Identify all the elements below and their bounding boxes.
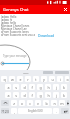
button[interactable]: o: [65, 76, 69, 82]
button[interactable]: g: [37, 84, 43, 90]
staticText: English (UK): [28, 109, 43, 113]
staticText: f: [31, 93, 33, 98]
button[interactable]: b: [43, 100, 49, 106]
button[interactable]: aFrom Supports Jones: [1, 30, 29, 33]
button[interactable]: Download: [38, 33, 55, 38]
staticText: f: [31, 85, 33, 90]
button[interactable]: Monique Chanel Lee: [1, 27, 27, 30]
staticText: o: [66, 77, 69, 82]
button[interactable]: y: [41, 76, 47, 82]
staticText: Monique Chanel Jones: [1, 24, 30, 27]
button[interactable]: u: [49, 76, 55, 82]
staticText: d: [23, 93, 26, 98]
button[interactable]: s: [13, 92, 19, 98]
button[interactable]: x: [19, 100, 25, 106]
button[interactable]: t: [33, 76, 39, 82]
button[interactable]: Backspace: [67, 100, 69, 106]
staticText: i: [60, 77, 61, 82]
staticText: g: [39, 93, 42, 98]
button[interactable]: f: [29, 84, 35, 90]
button[interactable]: hello: [22, 71, 30, 74]
button[interactable]: Type your message: [3, 54, 27, 58]
staticText: u: [51, 77, 54, 82]
staticText: s: [15, 93, 17, 98]
button[interactable]: Jadwa: hello: [1, 21, 17, 24]
button[interactable]: Genesys Chat: [3, 7, 29, 12]
staticText: e: [19, 77, 22, 82]
staticText: Monique Chanel Lee: [1, 27, 27, 30]
button[interactable]: v: [35, 100, 41, 106]
button[interactable]: h: [45, 92, 51, 98]
button[interactable]: aFrom Supports sent you a: [1, 33, 35, 36]
staticText: s: [15, 85, 17, 90]
staticText: h: [47, 85, 50, 90]
button[interactable]: k: [61, 92, 67, 98]
staticText: k: [63, 93, 65, 98]
button[interactable]: k: [61, 84, 67, 90]
button[interactable]: j: [53, 84, 59, 90]
button[interactable]: n: [51, 100, 57, 106]
staticText: z: [13, 101, 15, 106]
staticText: h: [47, 93, 50, 98]
button[interactable]: q: [1, 76, 7, 82]
button[interactable]: ,: [11, 108, 17, 114]
staticText: k: [63, 85, 65, 90]
button[interactable]: d: [21, 92, 27, 98]
staticText: c: [29, 101, 31, 106]
staticText: Jadwa: hi: [1, 18, 13, 21]
staticText: j: [56, 85, 57, 90]
button[interactable]: Jadwa: hi: [1, 18, 13, 21]
button[interactable]: Jadwa: Hello: [1, 15, 17, 18]
staticText: a: [7, 85, 10, 90]
button[interactable]: d: [21, 84, 27, 90]
staticText: d: [23, 85, 26, 90]
staticText: r: [27, 77, 29, 82]
staticText: aFrom Supports Jones: [1, 30, 29, 33]
button[interactable]: r: [25, 76, 31, 82]
staticText: t: [35, 77, 37, 82]
button[interactable]: j: [53, 92, 59, 98]
button[interactable]: i: [57, 76, 63, 82]
staticText: b: [45, 101, 48, 106]
button[interactable]: h: [45, 84, 51, 90]
button[interactable]: Close chat: [61, 5, 70, 14]
button[interactable]: Attach: [0, 61, 4, 65]
button[interactable]: Shift: [1, 100, 9, 106]
staticText: n: [53, 101, 56, 106]
button[interactable]: e: [17, 76, 23, 82]
staticText: y: [43, 77, 45, 82]
staticText: ?123: [1, 109, 9, 114]
staticText: aFrom Supports sent you a: [1, 33, 35, 36]
staticText: hello: [23, 71, 29, 74]
staticText: Jadwa: hello: [1, 21, 17, 24]
button[interactable]: s: [13, 84, 19, 90]
button[interactable]: w: [9, 76, 15, 82]
button[interactable]: f: [29, 92, 35, 98]
button[interactable]: Monique Chanel Jones: [1, 24, 30, 27]
staticText: a: [7, 93, 10, 98]
staticText: v: [37, 101, 39, 106]
staticText: Jadwa: Hello: [1, 15, 17, 18]
button[interactable]: c: [27, 100, 33, 106]
button[interactable]: Space: [18, 108, 52, 114]
button[interactable]: a: [5, 92, 11, 98]
button[interactable]: a: [5, 84, 11, 90]
staticText: m: [60, 101, 64, 106]
button[interactable]: ?123: [1, 108, 9, 114]
staticText: ,: [14, 109, 15, 114]
staticText: w: [11, 77, 14, 82]
button[interactable]: z: [11, 100, 17, 106]
staticText: j: [56, 93, 57, 98]
button[interactable]: Enter: [61, 108, 69, 114]
staticText: x: [21, 101, 23, 106]
staticText: g: [39, 85, 42, 90]
button[interactable]: .: [53, 108, 59, 114]
button[interactable]: g: [37, 92, 43, 98]
staticText: .: [56, 109, 57, 114]
staticText: q: [3, 77, 6, 82]
button[interactable]: m: [59, 100, 65, 106]
